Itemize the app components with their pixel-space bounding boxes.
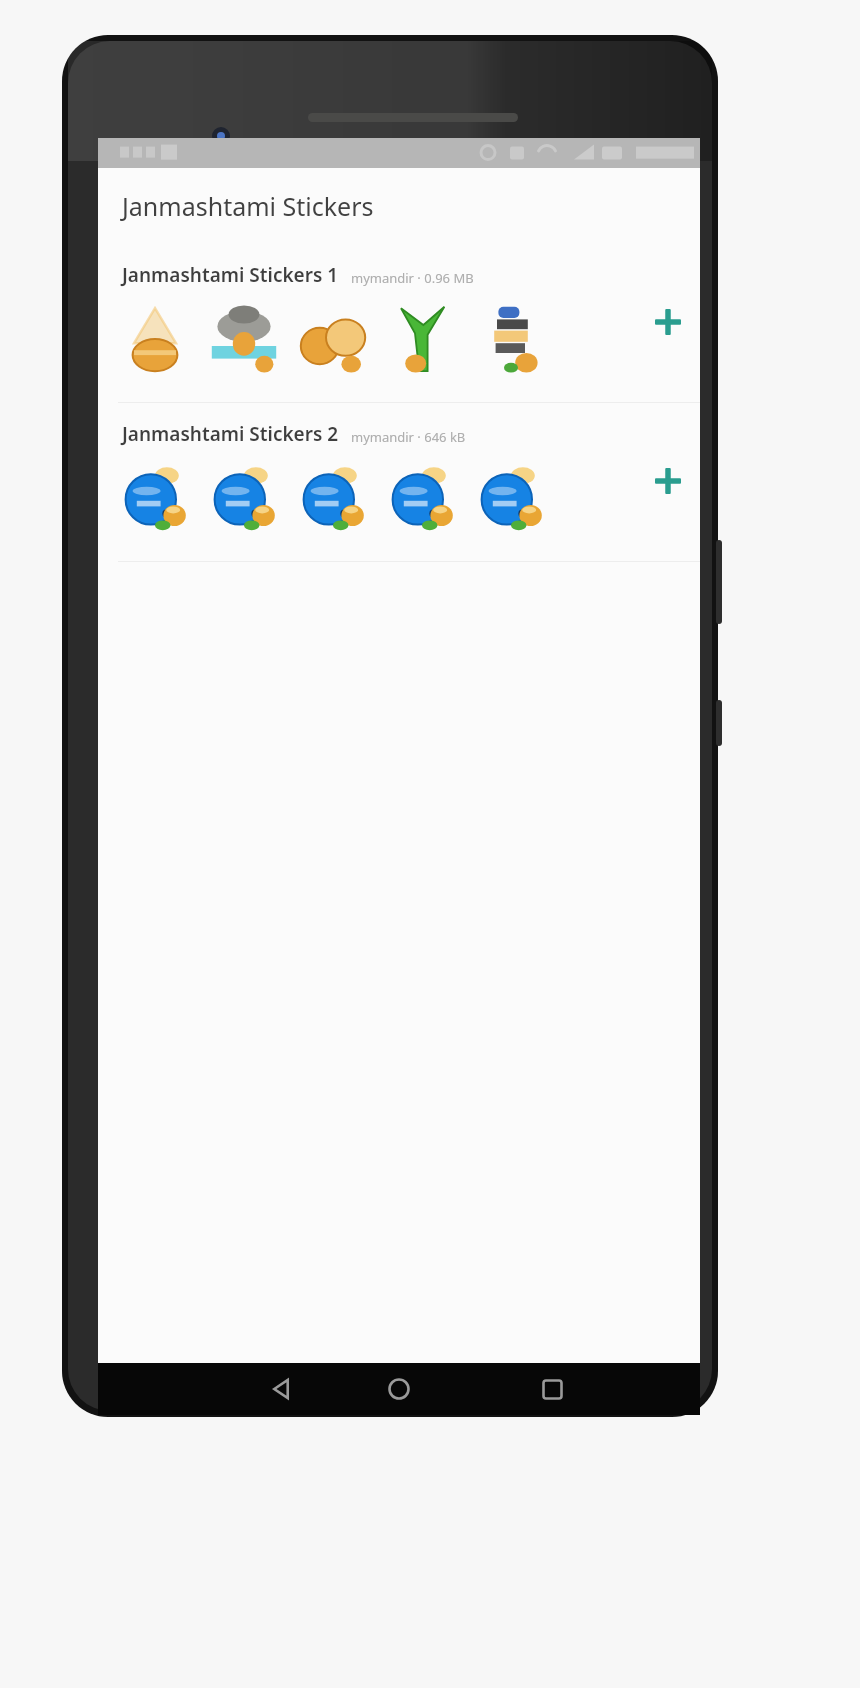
button[interactable]: Add sticker pack	[644, 457, 692, 505]
button[interactable]: Janmashtami Stickers 1	[98, 244, 700, 402]
button[interactable]: Recent apps	[524, 1363, 580, 1415]
button[interactable]: Back	[253, 1363, 309, 1415]
staticText: mymandir · 646 kB	[351, 428, 466, 446]
button[interactable]: Janmashtami Stickers 2	[98, 403, 700, 561]
button[interactable]: Add sticker pack	[644, 298, 692, 346]
staticText: Janmashtami Stickers 2	[122, 421, 339, 447]
staticText: Janmashtami Stickers 1	[122, 262, 339, 288]
staticText: mymandir · 0.96 MB	[351, 269, 474, 287]
button[interactable]: Home	[371, 1363, 427, 1415]
staticText: Janmashtami Stickers	[122, 189, 374, 223]
